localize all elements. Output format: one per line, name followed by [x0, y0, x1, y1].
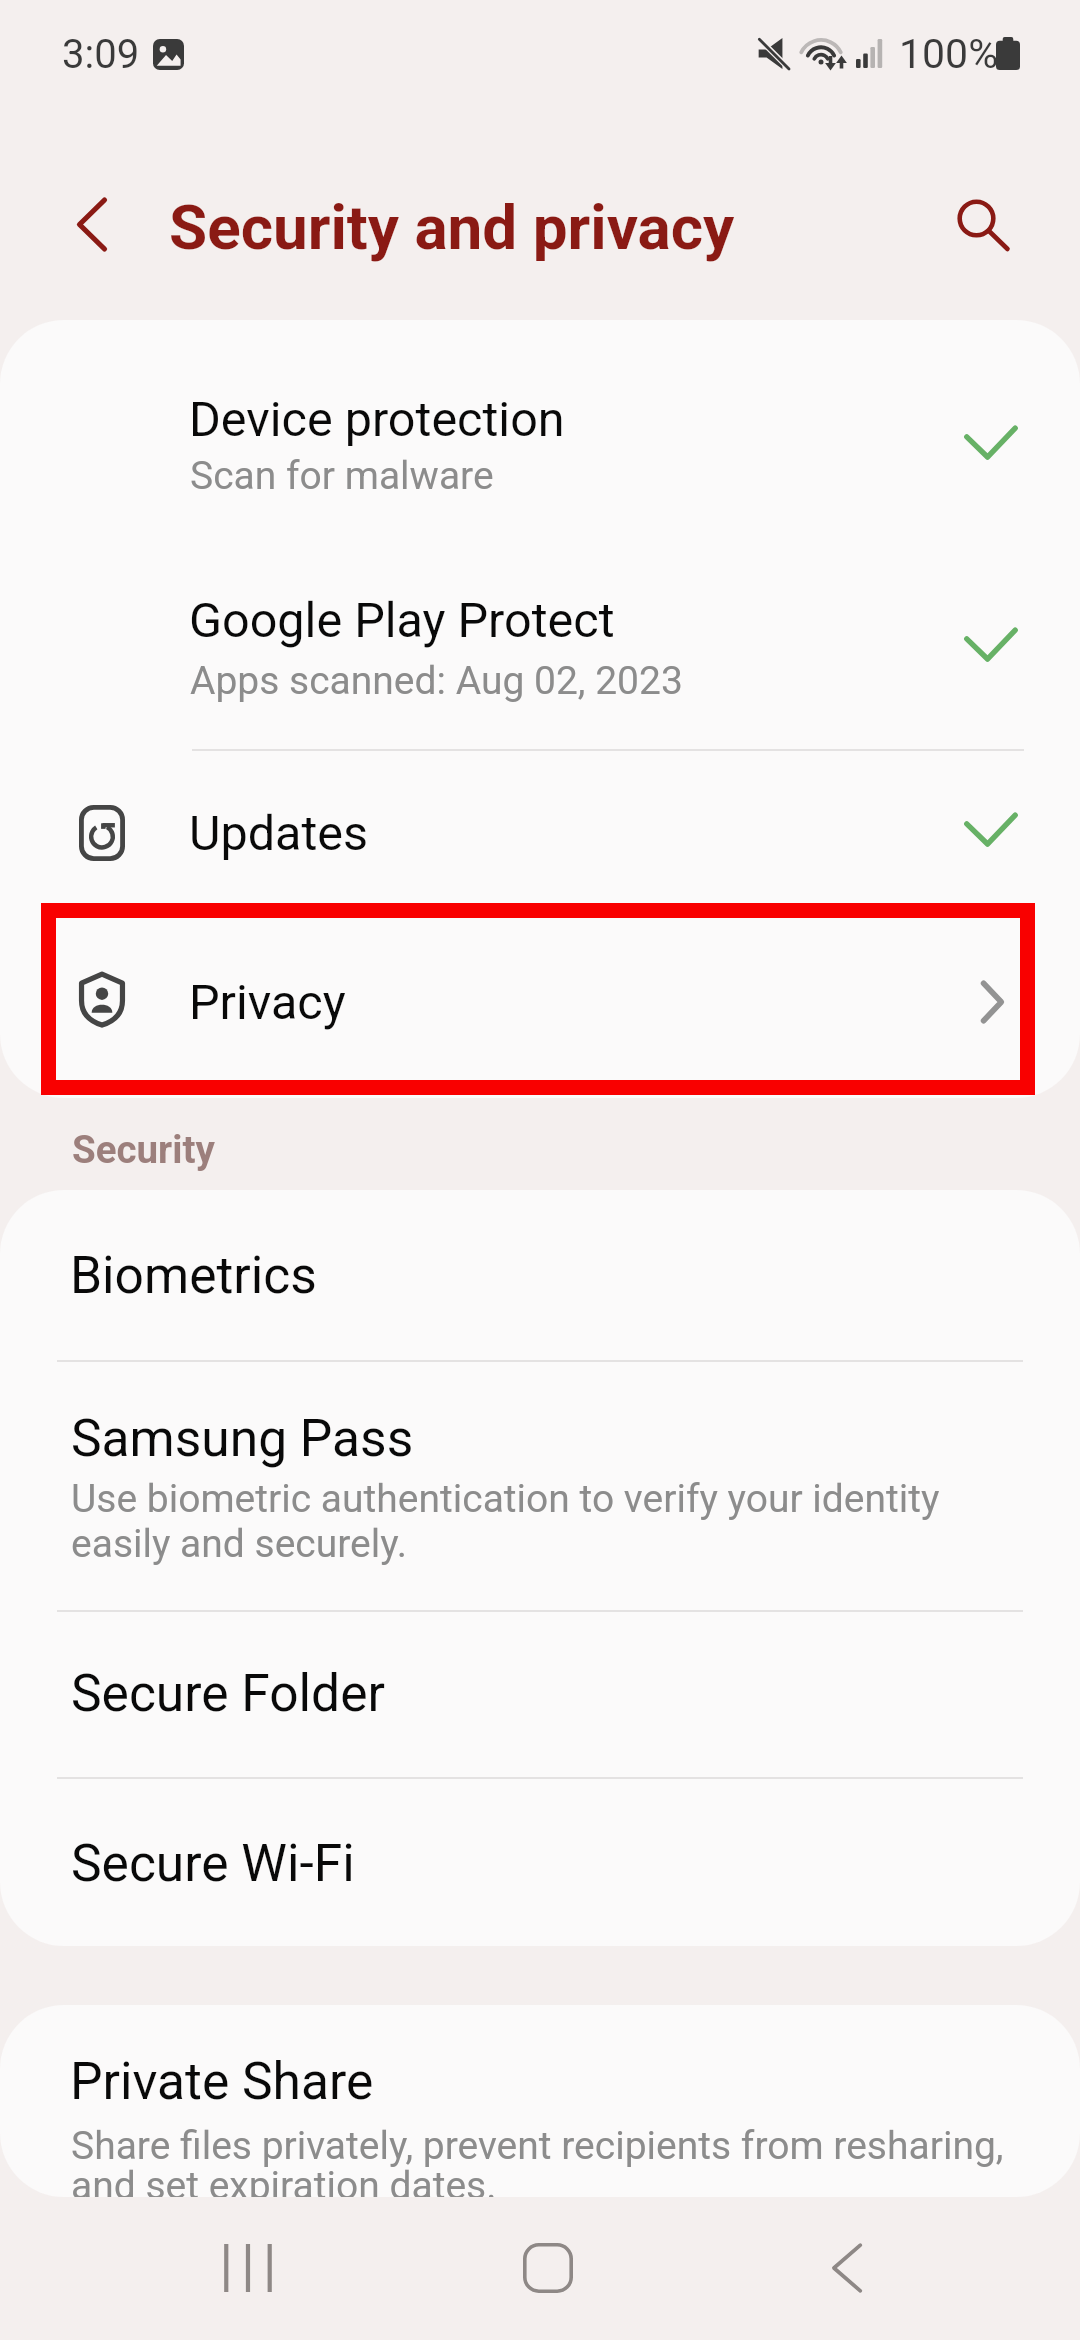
button[interactable]: Navigate up [46, 179, 136, 269]
button[interactable]: Samsung Pass [0, 1362, 1080, 1610]
staticText: easily and securely. [71, 1521, 407, 1567]
button[interactable]: Biometrics [0, 1190, 1080, 1360]
button[interactable]: Secure Folder [0, 1612, 1080, 1777]
staticText: Private Share [70, 2051, 374, 2111]
staticText: Share files privately, prevent recipient… [71, 2123, 1004, 2169]
staticText: Apps scanned: Aug 02, 2023 [190, 658, 683, 704]
staticText: Updates [189, 805, 369, 862]
staticText: Biometrics [70, 1245, 317, 1305]
staticText: Privacy [189, 974, 346, 1031]
button[interactable]: Privacy [0, 903, 1080, 1095]
button[interactable]: Google Play Protect [0, 545, 1080, 748]
button[interactable]: Search [938, 179, 1028, 269]
staticText: Security [72, 1127, 215, 1172]
staticText: Use biometric authentication to verify y… [71, 1476, 940, 1522]
staticText: Secure Folder [71, 1663, 385, 1723]
button[interactable]: Secure Wi-Fi [0, 1779, 1080, 1946]
staticText: 100% [899, 30, 999, 78]
staticText: Scan for malware [190, 453, 494, 499]
staticText: Device protection [189, 391, 565, 448]
button[interactable]: Home [468, 2196, 628, 2340]
staticText: Samsung Pass [71, 1408, 414, 1468]
staticText: Google Play Protect [189, 592, 615, 649]
staticText: and set expiration dates. [71, 2163, 497, 2197]
staticText: Security and privacy [169, 191, 735, 264]
button[interactable]: Private Share [0, 2005, 1080, 2197]
button[interactable]: Back [768, 2196, 928, 2340]
button[interactable]: Recent apps [166, 2196, 326, 2340]
button[interactable]: Updates [0, 750, 1080, 903]
staticText: Secure Wi-Fi [71, 1833, 355, 1893]
button[interactable]: Device protection [0, 320, 1080, 545]
staticText: 3:09 [62, 31, 140, 78]
